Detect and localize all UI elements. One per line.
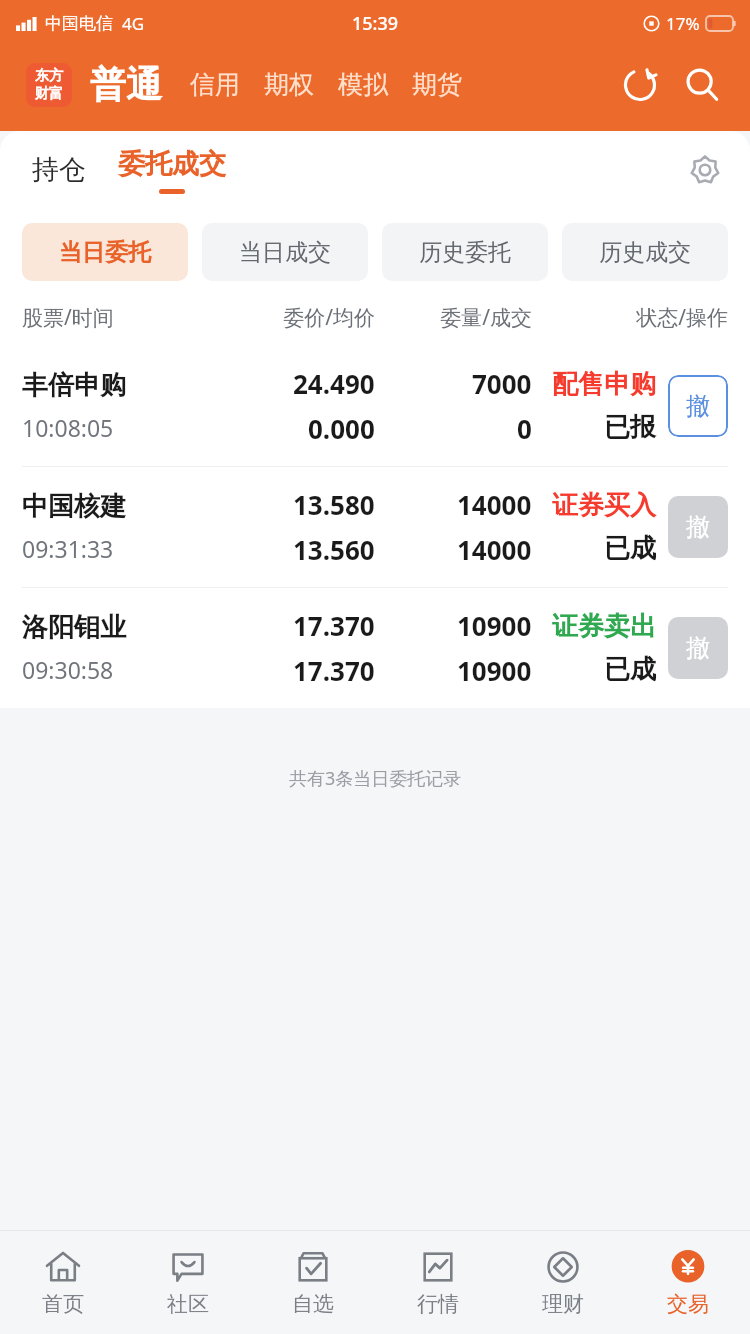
button[interactable]: 持仓 [28,145,90,195]
staticText: 证券买入 [552,489,656,522]
button[interactable]: 中国核建 [22,467,728,587]
staticText: 中国核建 [22,490,126,523]
button[interactable]: 社区 [125,1231,250,1334]
button[interactable]: 洛阳钼业 [22,588,728,708]
staticText: 首页 [42,1291,84,1317]
staticText: 状态/操作 [532,303,728,332]
button[interactable]: 期权 [264,69,314,100]
staticText: 7000 [472,366,532,401]
staticText: 13.580 [293,487,375,522]
staticText: 已报 [604,411,656,444]
staticText: 4G [122,12,145,35]
staticText: 24.490 [293,366,375,401]
staticText: 10900 [457,608,532,643]
staticText: 股票/时间 [22,303,202,332]
button[interactable]: 撤 [668,617,728,679]
staticText: 撤 [686,512,710,542]
staticText: 09:31:33 [22,533,114,564]
staticText: 14000 [457,532,532,567]
staticText: 0.000 [308,411,375,446]
staticText: 委量/成交 [375,303,532,332]
button[interactable]: 普通 [90,62,162,107]
button[interactable]: 委托成交 [118,147,226,194]
staticText: 10900 [457,653,532,688]
button[interactable]: Search [676,59,728,111]
staticText: 17% [666,12,700,35]
button[interactable]: 模拟 [338,69,388,100]
staticText: 委价/均价 [202,303,375,332]
staticText: 13.560 [293,532,375,567]
staticText: 持仓 [32,153,86,187]
button[interactable]: Settings [680,145,730,195]
button[interactable]: Refresh [614,59,666,111]
staticText: 10:08:05 [22,412,114,443]
staticText: 撤 [686,391,710,421]
button[interactable]: 理财 [500,1231,625,1334]
button[interactable]: 期货 [412,69,462,100]
button[interactable]: 当日成交 [202,223,368,281]
staticText: 0 [517,411,532,446]
button[interactable]: 信用 [190,69,240,100]
staticText: 财富 [35,85,63,103]
staticText: 委托成交 [118,147,226,181]
staticText: 17.370 [293,608,375,643]
staticText: 09:30:58 [22,654,114,685]
staticText: 已成 [604,532,656,565]
staticText: 配售申购 [552,368,656,401]
staticText: 东方 [35,67,63,85]
staticText: 历史委托 [419,238,511,267]
staticText: 14000 [457,487,532,522]
staticText: 17.370 [293,653,375,688]
staticText: 行情 [417,1291,459,1317]
staticText: 丰倍申购 [22,369,126,402]
staticText: 当日委托 [59,238,151,267]
staticText: 中国电信 [45,13,113,34]
button[interactable]: 行情 [375,1231,500,1334]
button[interactable]: 撤 [668,375,728,437]
staticText: 自选 [292,1291,334,1317]
button[interactable]: 丰倍申购 [22,346,728,466]
button[interactable]: 首页 [0,1231,125,1334]
button[interactable]: 历史成交 [562,223,728,281]
button[interactable]: 历史委托 [382,223,548,281]
button[interactable]: 撤 [668,496,728,558]
button[interactable]: 当日委托 [22,223,188,281]
staticText: 共有3条当日委托记录 [289,766,462,791]
staticText: 证券卖出 [552,610,656,643]
staticText: 撤 [686,633,710,663]
button[interactable]: 自选 [250,1231,375,1334]
staticText: 洛阳钼业 [22,611,126,644]
staticText: 交易 [667,1291,709,1317]
button[interactable]: 交易 [625,1231,750,1334]
staticText: 社区 [167,1291,209,1317]
staticText: 历史成交 [599,238,691,267]
staticText: 已成 [604,653,656,686]
staticText: 15:39 [352,11,399,36]
staticText: 理财 [542,1291,584,1317]
staticText: 当日成交 [239,238,331,267]
